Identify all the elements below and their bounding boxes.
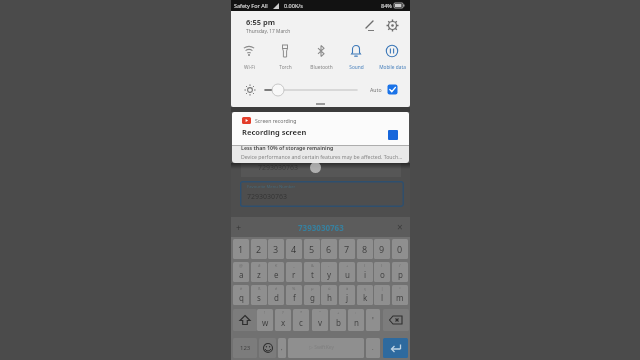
button[interactable]: 1 xyxy=(233,239,249,259)
button[interactable] xyxy=(388,130,398,140)
staticText: 123 xyxy=(240,344,251,352)
staticText: n xyxy=(354,317,359,328)
staticText: Favourite Menu Number xyxy=(247,184,296,190)
staticText: ° xyxy=(399,286,401,291)
button[interactable]: ) xyxy=(374,262,390,282)
button[interactable]: Mobile data xyxy=(376,43,408,71)
staticText: + xyxy=(337,310,340,315)
staticText: Screen recording xyxy=(255,117,297,124)
button[interactable]: 4 xyxy=(286,239,302,259)
button[interactable]: Sound xyxy=(340,43,372,71)
staticText: ) xyxy=(381,263,383,268)
button[interactable]: & xyxy=(304,262,320,282)
staticText: & xyxy=(311,263,314,268)
button[interactable] xyxy=(363,20,375,32)
button[interactable]: 9 xyxy=(374,239,390,259)
button[interactable] xyxy=(263,83,361,97)
staticText: , xyxy=(281,344,283,352)
staticText: | xyxy=(381,286,384,291)
button[interactable]: ° xyxy=(392,285,408,305)
button[interactable]: 123 xyxy=(233,338,257,358)
button[interactable]: è xyxy=(233,285,249,305)
button[interactable]: Wi-Fi xyxy=(233,43,265,71)
button[interactable]: € xyxy=(268,262,284,282)
staticText: ù xyxy=(328,286,331,291)
button[interactable]: ( xyxy=(357,262,373,282)
button[interactable]: + xyxy=(236,221,242,233)
staticText: 9 xyxy=(379,243,385,255)
button[interactable]: µ xyxy=(304,285,320,305)
button[interactable]: 7 xyxy=(339,239,355,259)
button[interactable]: 8 xyxy=(357,239,373,259)
staticText: q xyxy=(239,292,244,303)
button[interactable]: ß xyxy=(251,285,267,305)
button[interactable]: % xyxy=(286,285,302,305)
button[interactable]: # xyxy=(251,262,267,282)
staticText: Auto xyxy=(370,86,382,93)
staticText: k xyxy=(363,292,368,303)
button[interactable]: × xyxy=(397,220,403,234)
button[interactable] xyxy=(233,309,257,331)
button[interactable]: _ xyxy=(286,262,302,282)
button[interactable]: 2 xyxy=(251,239,267,259)
staticText: 8 xyxy=(362,243,368,255)
staticText: Bluetooth xyxy=(310,64,333,71)
staticText: Thursday, 17 March xyxy=(246,28,291,35)
button[interactable]: ç xyxy=(357,285,373,305)
button[interactable]: : xyxy=(348,309,364,331)
staticText: 7293030763 xyxy=(258,163,299,173)
staticText: b xyxy=(336,317,341,328)
staticText: 1 xyxy=(238,243,244,255)
staticText: _ xyxy=(293,263,295,268)
staticText: # xyxy=(258,263,261,268)
button[interactable]: + xyxy=(330,309,346,331)
button[interactable]: 3 xyxy=(268,239,284,259)
button[interactable] xyxy=(383,338,408,358)
button[interactable]: @ xyxy=(233,262,249,282)
button[interactable]: 0 xyxy=(392,239,408,259)
staticText: % xyxy=(292,286,296,291)
button[interactable]: / xyxy=(392,262,408,282)
staticText: j xyxy=(346,292,349,303)
staticText: Wi-Fi xyxy=(244,64,255,71)
button[interactable]: Torch xyxy=(269,43,301,71)
button[interactable]: ' xyxy=(366,309,380,331)
button[interactable] xyxy=(387,84,398,95)
button[interactable]: ? xyxy=(275,309,291,331)
staticText: 6 xyxy=(326,243,332,255)
button[interactable]: 6 xyxy=(321,239,337,259)
button[interactable]: 5 xyxy=(304,239,320,259)
button[interactable]: " xyxy=(312,309,328,331)
button[interactable] xyxy=(383,309,409,331)
button[interactable]: , xyxy=(278,338,286,358)
button[interactable]: - xyxy=(321,262,337,282)
button[interactable]: Bluetooth xyxy=(305,43,337,71)
button[interactable]: * xyxy=(293,309,309,331)
staticText: Safety For All xyxy=(234,2,268,9)
button[interactable]: + xyxy=(339,262,355,282)
staticText: 4 xyxy=(291,243,297,255)
staticText: z xyxy=(257,269,261,280)
staticText: é xyxy=(275,286,278,291)
button[interactable]: | xyxy=(374,285,390,305)
button[interactable]: à xyxy=(339,285,355,305)
staticText: 84% xyxy=(381,2,392,9)
staticText: ( xyxy=(364,263,366,268)
button[interactable]: é xyxy=(268,285,284,305)
button[interactable] xyxy=(259,338,276,358)
staticText: 3 xyxy=(273,243,279,255)
staticText: y xyxy=(327,269,332,280)
staticText: c xyxy=(299,317,303,328)
button[interactable]: ù xyxy=(321,285,337,305)
button[interactable]: ! xyxy=(257,309,273,331)
button[interactable] xyxy=(386,19,399,32)
button[interactable]: 7393030763 xyxy=(298,222,344,233)
staticText: µ xyxy=(311,286,314,291)
staticText: i xyxy=(364,269,367,280)
button[interactable]: Screen recording xyxy=(232,112,409,145)
staticText: g xyxy=(310,292,315,303)
button[interactable]: Less than 10% of storage remaining xyxy=(232,145,409,163)
